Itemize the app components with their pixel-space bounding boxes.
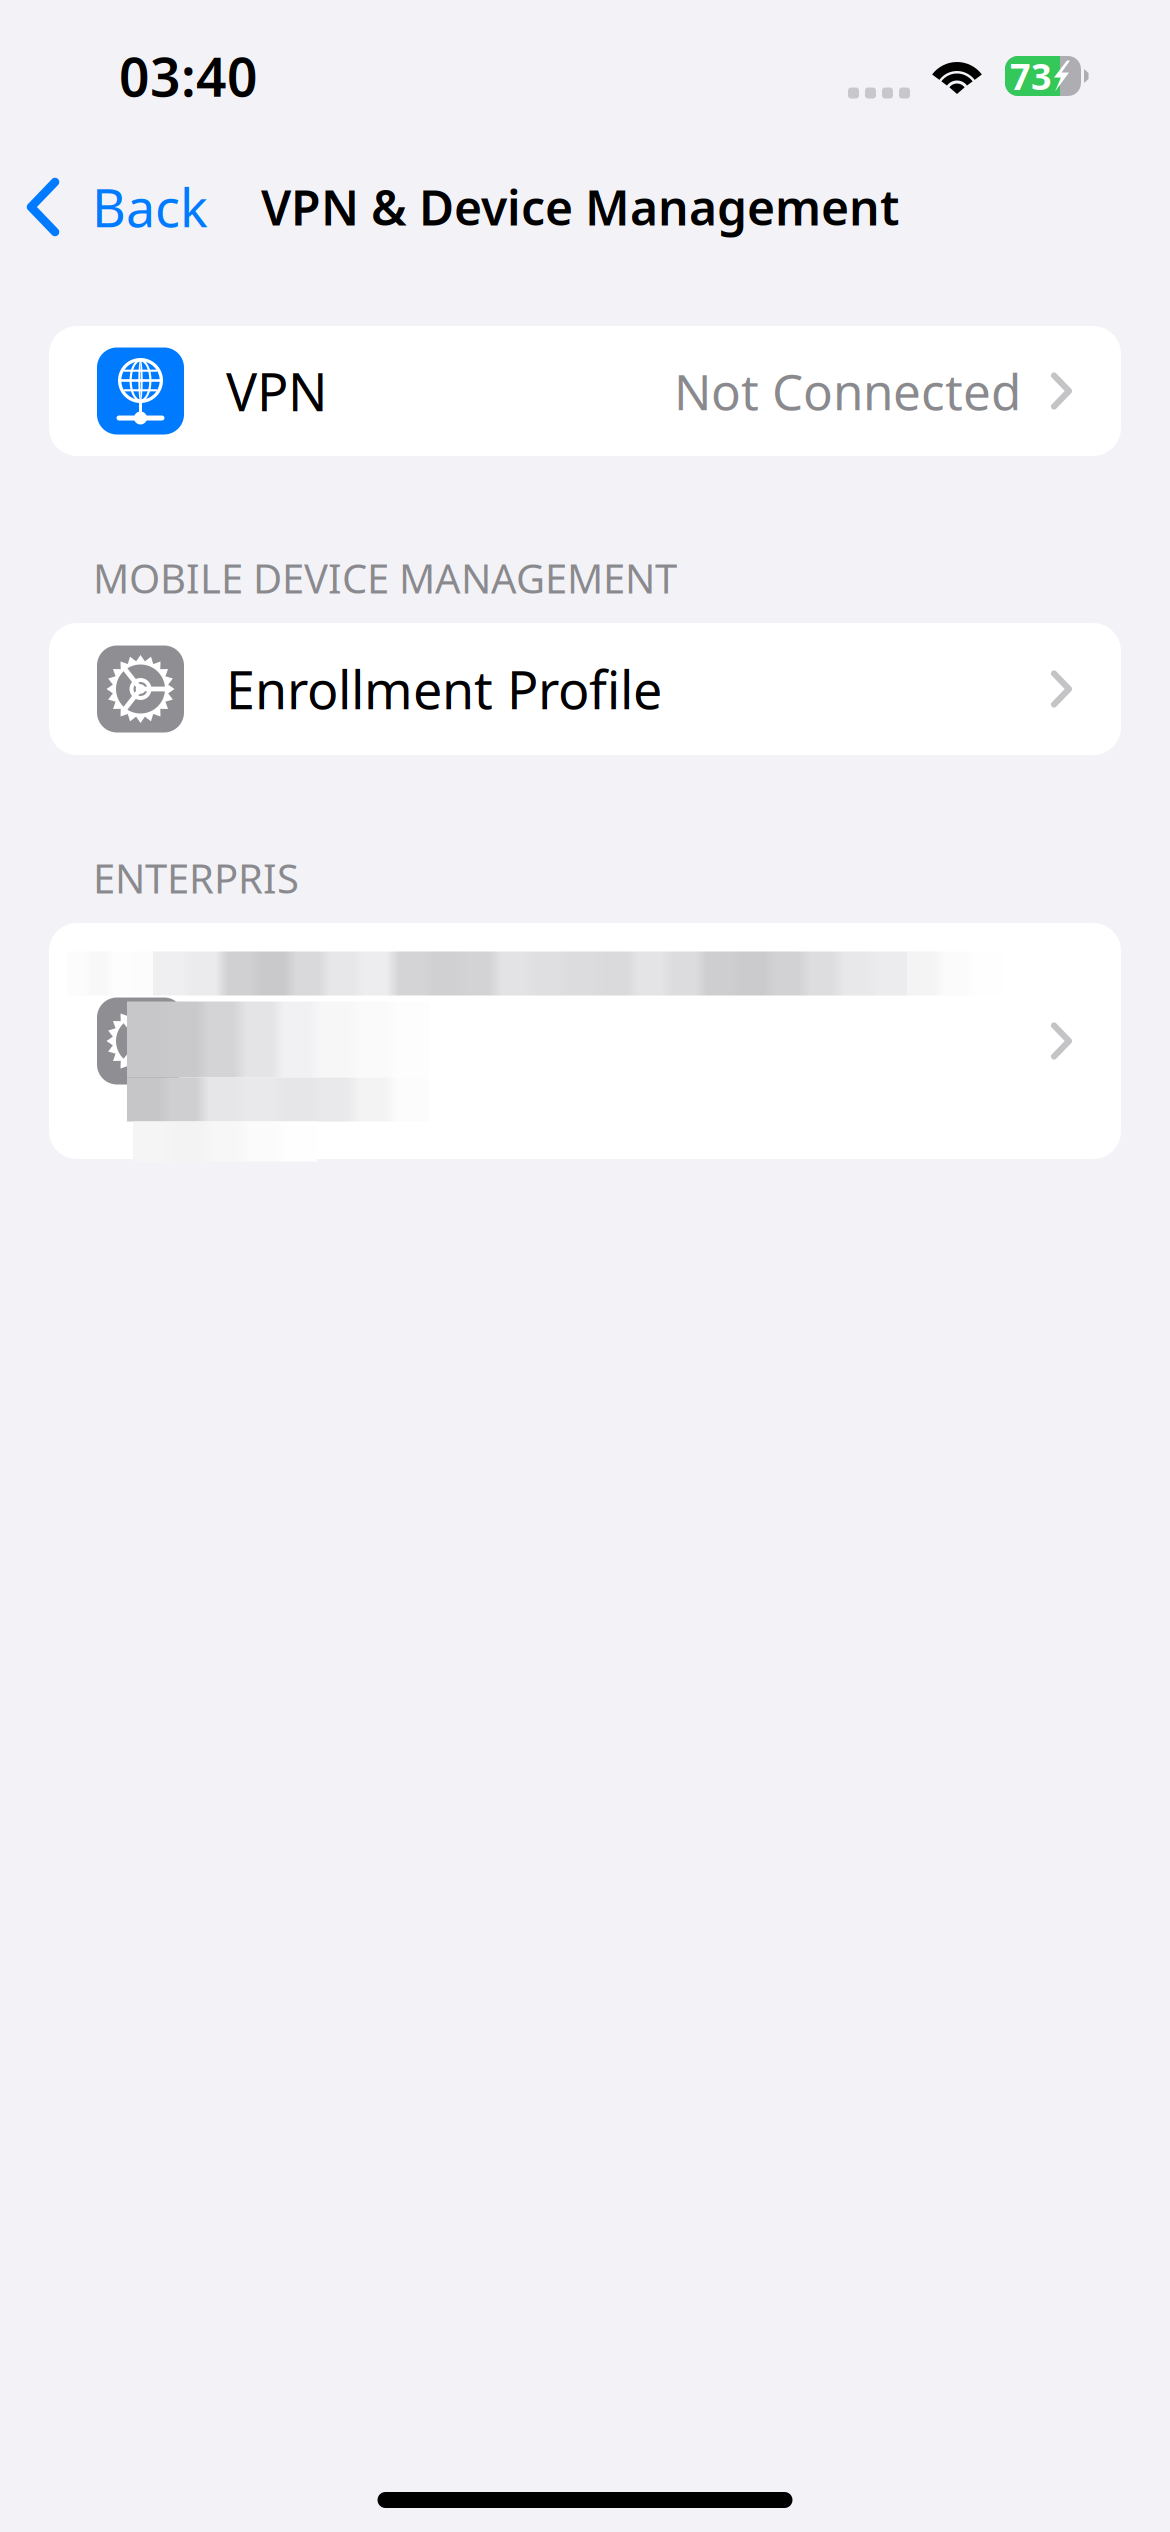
staticText: 03:40 (119, 41, 258, 111)
staticText: VPN & Device Management (261, 175, 899, 239)
staticText: Not Connected (674, 358, 1021, 424)
button[interactable]: Back (0, 152, 218, 262)
staticText: VPN (226, 356, 328, 426)
button[interactable]: VPN (49, 326, 1121, 456)
button[interactable]: Enterprise profile (0, 923, 1170, 1159)
staticText: 73 (1010, 52, 1052, 100)
staticText: ENTERPRIS (93, 851, 299, 904)
staticText: Back (92, 172, 208, 242)
button[interactable]: Enrollment Profile (49, 623, 1121, 755)
staticText: MOBILE DEVICE MANAGEMENT (93, 551, 677, 604)
staticText: Enrollment Profile (226, 654, 662, 724)
